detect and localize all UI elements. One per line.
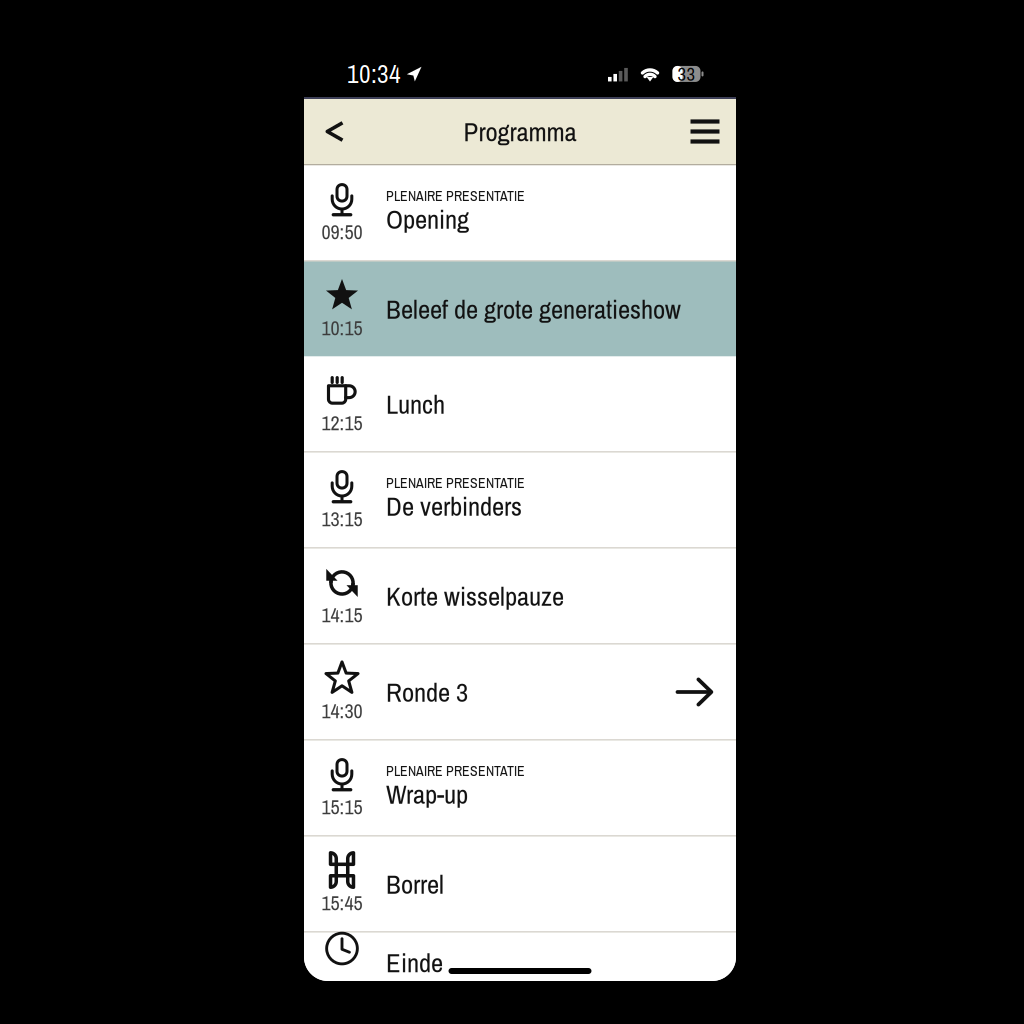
button[interactable]: Back [304,99,366,164]
staticText: 14:30 [321,697,362,724]
staticText: Korte wisselpauze [386,578,564,614]
staticText: Lunch [386,386,445,422]
button[interactable]: 09:50 [304,165,736,260]
button[interactable]: 14:15 [304,548,736,643]
button[interactable]: Menu [674,99,736,164]
staticText: 12:15 [321,409,362,436]
staticText: PLENAIRE PRESENTATIE [386,474,525,492]
staticText: 33 [677,61,695,86]
button[interactable]: 15:45 [304,836,736,931]
button[interactable]: 13:15 [304,452,736,547]
staticText: 10:15 [321,314,362,341]
staticText: PLENAIRE PRESENTATIE [386,762,525,780]
staticText: 14:15 [321,601,362,628]
button[interactable]: 14:30 [304,644,736,739]
button[interactable]: 10:15 [304,261,736,356]
staticText: De verbinders [386,488,522,524]
staticText: 10:34 [347,57,401,91]
staticText: 15:45 [321,889,362,916]
staticText: Wrap-up [386,776,468,812]
staticText: Beleef de grote generatieshow [386,291,681,327]
button[interactable]: 15:15 [304,740,736,835]
staticText: 13:15 [321,505,362,532]
staticText: PLENAIRE PRESENTATIE [386,187,525,205]
staticText: 15:15 [321,793,362,820]
staticText: 09:50 [321,218,362,245]
staticText: Borrel [386,866,444,902]
staticText: Ronde 3 [386,674,468,710]
button[interactable] [304,932,736,992]
staticText: Einde [386,944,443,980]
staticText: Opening [386,201,469,237]
button[interactable]: 12:15 [304,356,736,451]
staticText: Programma [463,113,576,149]
